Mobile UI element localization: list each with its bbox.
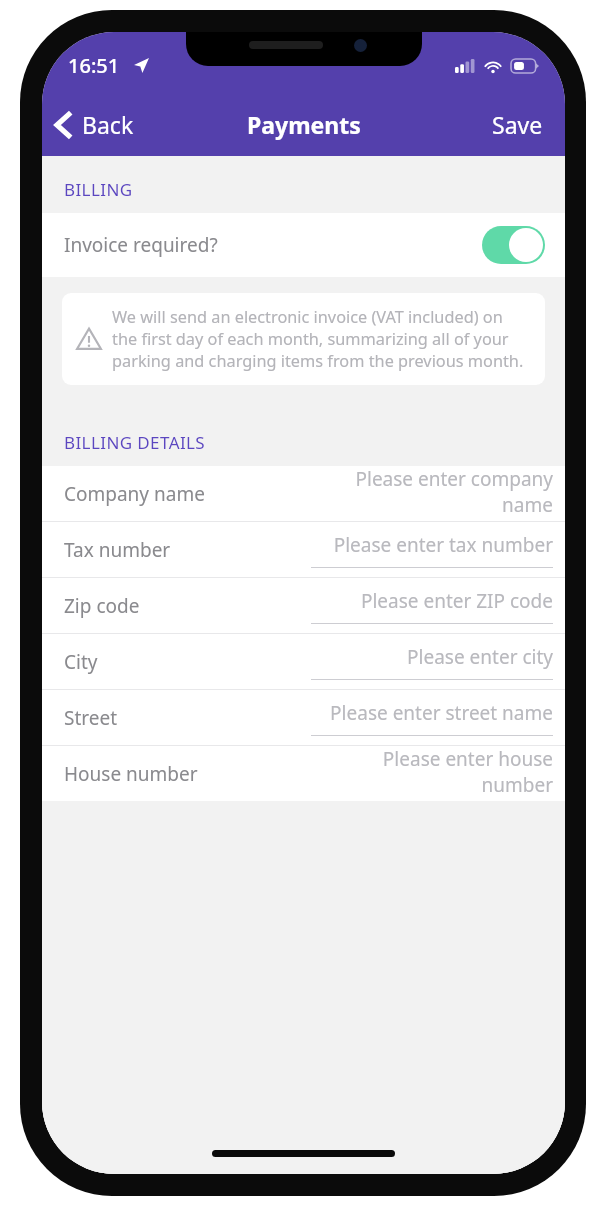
button[interactable]: Save [470, 99, 565, 150]
button[interactable]: Tax number [42, 522, 565, 577]
button[interactable]: Company name [42, 466, 565, 521]
staticText: BILLING [64, 178, 133, 201]
staticText: House number [64, 761, 198, 787]
button[interactable]: City [42, 634, 565, 689]
staticText: Invoice required? [64, 232, 218, 258]
staticText: Company name [64, 481, 205, 507]
button[interactable]: Invoice required? [42, 213, 565, 277]
staticText: Please enter ZIP code [360, 588, 553, 614]
staticText: Please enter city [407, 644, 553, 670]
staticText: Please enter company name [311, 466, 553, 518]
staticText: Tax number [64, 537, 171, 563]
button[interactable]: Invoice required toggle [482, 226, 545, 264]
button[interactable]: Zip code [42, 578, 565, 633]
button[interactable]: Back [42, 103, 146, 146]
staticText: Zip code [64, 593, 140, 619]
staticText: City [64, 649, 98, 675]
staticText: Please enter house number [311, 746, 553, 798]
button[interactable]: Street [42, 690, 565, 745]
staticText: Back [82, 109, 134, 140]
button[interactable]: House number [42, 746, 565, 801]
staticText: Payments [247, 109, 361, 140]
staticText: We will send an electronic invoice (VAT … [112, 306, 531, 372]
staticText: Please enter tax number [333, 532, 553, 558]
staticText: 16:51 [68, 52, 120, 79]
staticText: Street [64, 705, 118, 731]
staticText: Please enter street name [330, 700, 553, 726]
staticText: BILLING DETAILS [64, 431, 206, 454]
